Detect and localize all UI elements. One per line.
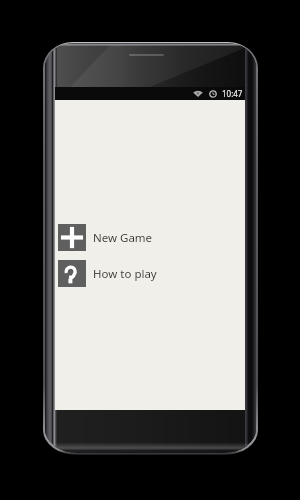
button[interactable]: How to play [58, 260, 157, 287]
staticText: 10:47 [222, 88, 243, 99]
staticText: How to play [93, 266, 157, 282]
staticText: New Game [93, 230, 153, 246]
button[interactable]: New Game [58, 224, 153, 251]
